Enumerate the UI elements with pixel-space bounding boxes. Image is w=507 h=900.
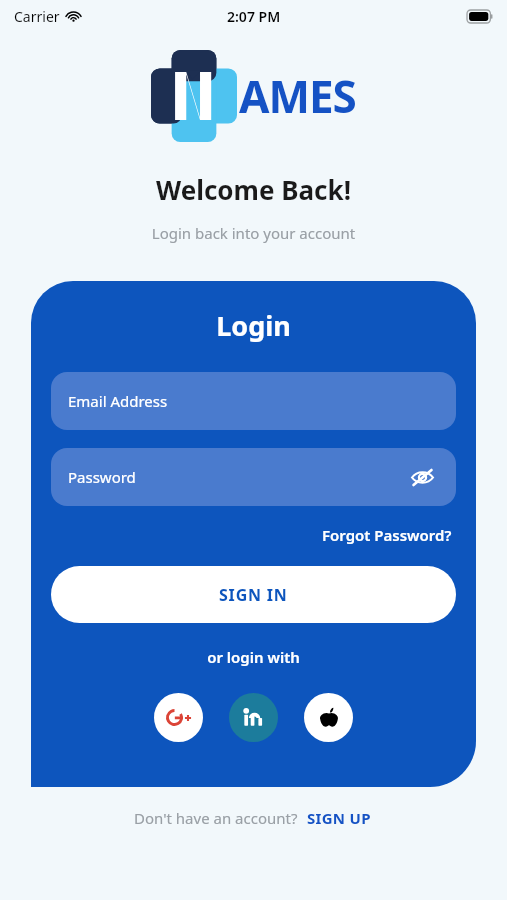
staticText: AMES (239, 66, 356, 126)
button[interactable]: Password (51, 448, 456, 506)
staticText: Login (51, 307, 456, 344)
button[interactable]: Sign in with LinkedIn (229, 693, 278, 742)
staticText: 2:07 PM (227, 7, 281, 26)
staticText: SIGN UP (307, 808, 371, 828)
button[interactable]: Forgot Password? (318, 522, 456, 548)
staticText: SIGN IN (219, 584, 288, 606)
staticText: Email Address (68, 391, 168, 411)
staticText: Login back into your account (0, 223, 507, 243)
button[interactable]: Sign in with Apple (304, 693, 353, 742)
staticText: Carrier (14, 7, 60, 26)
staticText: Welcome Back! (0, 172, 507, 207)
button[interactable]: Email Address (51, 372, 456, 430)
button[interactable]: SIGN IN (51, 566, 456, 623)
staticText: Password (68, 467, 136, 487)
button[interactable]: Show password (405, 460, 439, 494)
staticText: or login with (51, 647, 456, 667)
button[interactable]: Sign in with Google (154, 693, 203, 742)
staticText: Don't have an account? (134, 808, 298, 828)
button[interactable]: SIGN UP (304, 805, 374, 831)
staticText: Forgot Password? (322, 525, 452, 545)
